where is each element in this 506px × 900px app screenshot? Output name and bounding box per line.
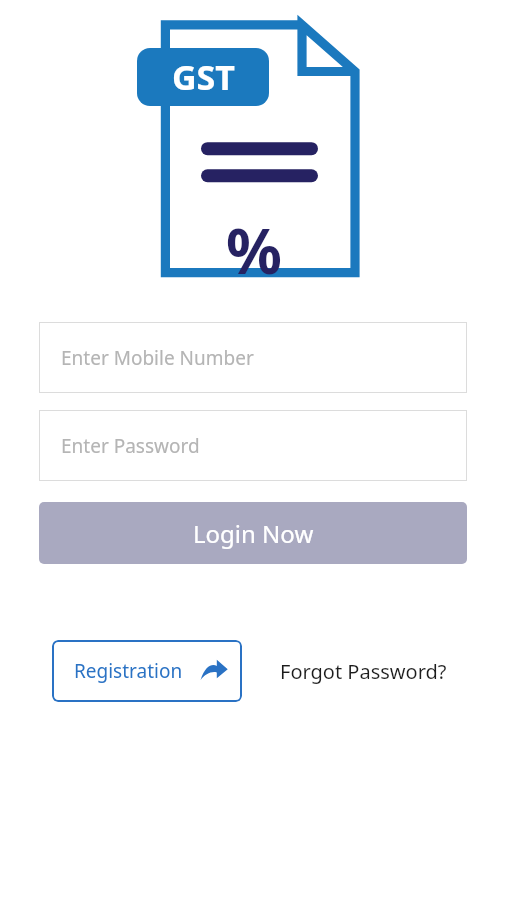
button[interactable]: Forgot Password? — [272, 648, 455, 695]
staticText: Enter Mobile Number — [61, 345, 254, 371]
staticText: Login Now — [193, 517, 314, 550]
button[interactable]: Enter Password — [39, 410, 467, 481]
other: Registration — [200, 657, 228, 685]
button[interactable]: Enter Mobile Number — [39, 322, 467, 393]
button[interactable]: Registration — [52, 640, 242, 702]
staticText: Enter Password — [61, 433, 200, 459]
staticText: Forgot Password? — [280, 658, 447, 685]
staticText: Registration — [74, 658, 183, 684]
staticText: % — [226, 208, 282, 292]
staticText: GST — [172, 54, 235, 100]
button[interactable]: Login Now — [39, 502, 467, 564]
